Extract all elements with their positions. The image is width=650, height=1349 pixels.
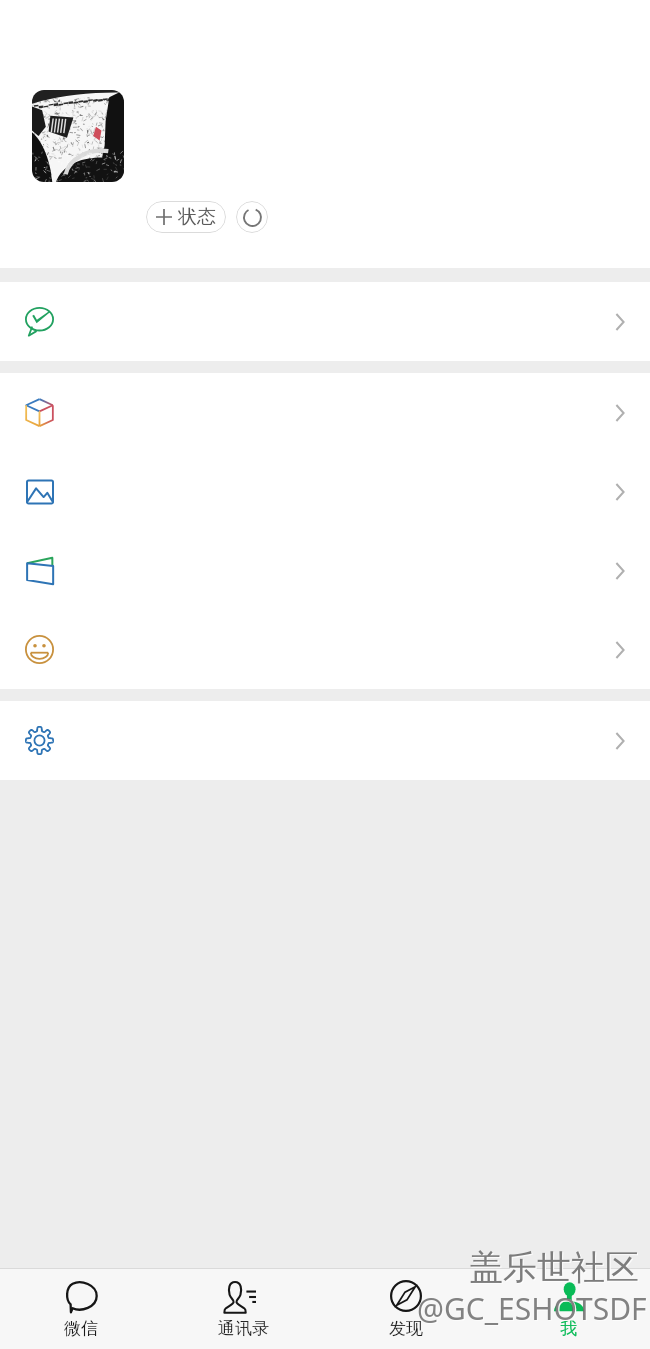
- button[interactable]: 通讯录: [162, 1269, 324, 1349]
- staticText: 盖乐世社区: [469, 1246, 639, 1289]
- button[interactable]: Refresh status: [236, 201, 268, 233]
- staticText: 状态: [178, 205, 216, 229]
- staticText: 发现: [389, 1318, 423, 1339]
- button[interactable]: Personal information: [0, 0, 650, 268]
- button[interactable]: 发现: [324, 1269, 487, 1349]
- button[interactable]: Settings: [0, 701, 650, 780]
- button[interactable]: Stickers: [0, 610, 650, 689]
- button[interactable]: Cards and Offers: [0, 531, 650, 610]
- button[interactable]: 微信: [0, 1269, 162, 1349]
- staticText: 我: [560, 1318, 577, 1339]
- button[interactable]: Profile photo: [32, 90, 124, 182]
- button[interactable]: 状态: [146, 201, 226, 233]
- button[interactable]: Services: [0, 282, 650, 361]
- staticText: @GC_ESHOTSDF: [417, 1288, 647, 1329]
- button[interactable]: 我: [487, 1269, 650, 1349]
- button[interactable]: Favorites: [0, 452, 650, 531]
- button[interactable]: Mini Programs: [0, 373, 650, 452]
- staticText: @GC_ESHOTSDF: [418, 1289, 648, 1330]
- staticText: 通讯录: [218, 1318, 269, 1339]
- staticText: 微信: [64, 1318, 98, 1339]
- staticText: 盖乐世社区: [470, 1247, 640, 1290]
